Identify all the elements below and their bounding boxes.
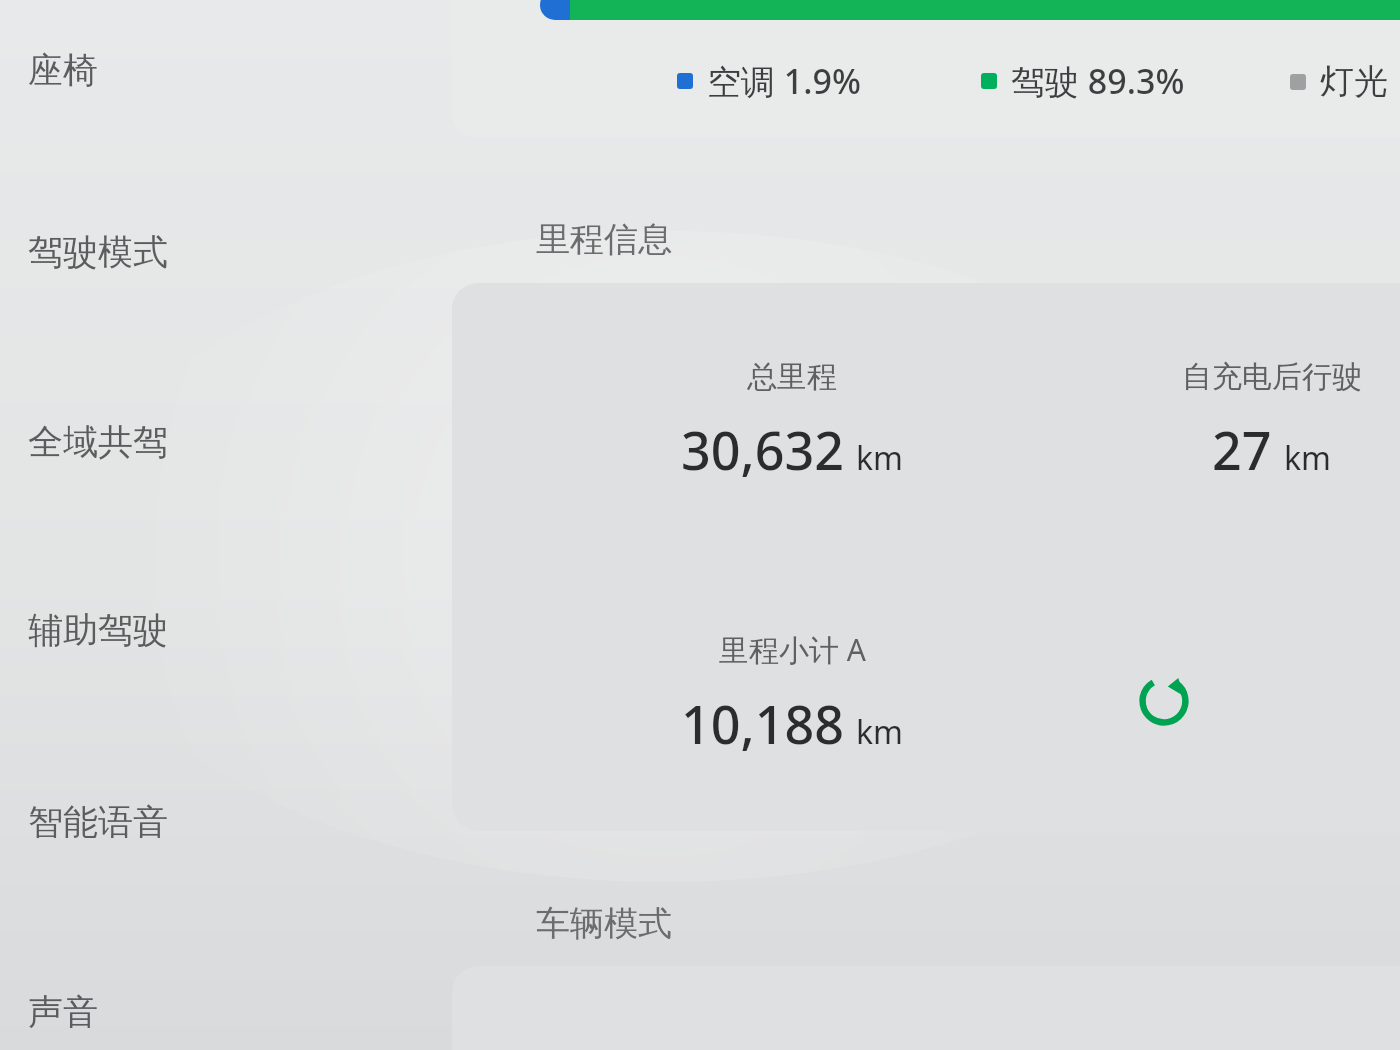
staticText: 30,632 xyxy=(681,414,844,485)
staticText: 座椅 xyxy=(28,48,98,92)
button[interactable]: 辅助驾驶 xyxy=(10,592,310,668)
staticText: 全域共驾 xyxy=(28,420,168,464)
staticText: 智能语音 xyxy=(28,800,168,844)
button[interactable]: 总里程 xyxy=(452,283,1400,557)
staticText: 空调 1.9% xyxy=(707,58,861,104)
button[interactable]: 里程小计 A xyxy=(452,557,1400,831)
staticText: km xyxy=(856,710,904,754)
staticText: 声音 xyxy=(28,990,98,1034)
button[interactable]: 智能语音 xyxy=(10,784,310,860)
staticText: 驾驶模式 xyxy=(28,230,168,274)
staticText: 灯光 xyxy=(1320,60,1388,103)
staticText: 驾驶 89.3% xyxy=(1011,58,1185,104)
staticText: 总里程 xyxy=(747,358,837,396)
button[interactable]: 驾驶模式 xyxy=(10,214,310,290)
staticText: km xyxy=(1284,436,1332,480)
staticText: 里程信息 xyxy=(536,218,672,261)
button[interactable]: 座椅 xyxy=(10,32,310,108)
staticText: 辅助驾驶 xyxy=(28,608,168,652)
staticText: km xyxy=(856,436,904,480)
staticText: 车辆模式 xyxy=(536,902,672,945)
button[interactable]: 声音 xyxy=(10,974,310,1050)
button[interactable]: 重置里程小计 A xyxy=(1120,657,1208,745)
staticText: 10,188 xyxy=(681,688,844,759)
staticText: 27 xyxy=(1212,414,1272,485)
staticText: 里程小计 A xyxy=(719,629,866,670)
staticText: 自充电后行驶 xyxy=(1182,358,1362,396)
button[interactable]: 空调 1.9% xyxy=(452,0,1400,138)
button[interactable]: 全域共驾 xyxy=(10,404,310,480)
